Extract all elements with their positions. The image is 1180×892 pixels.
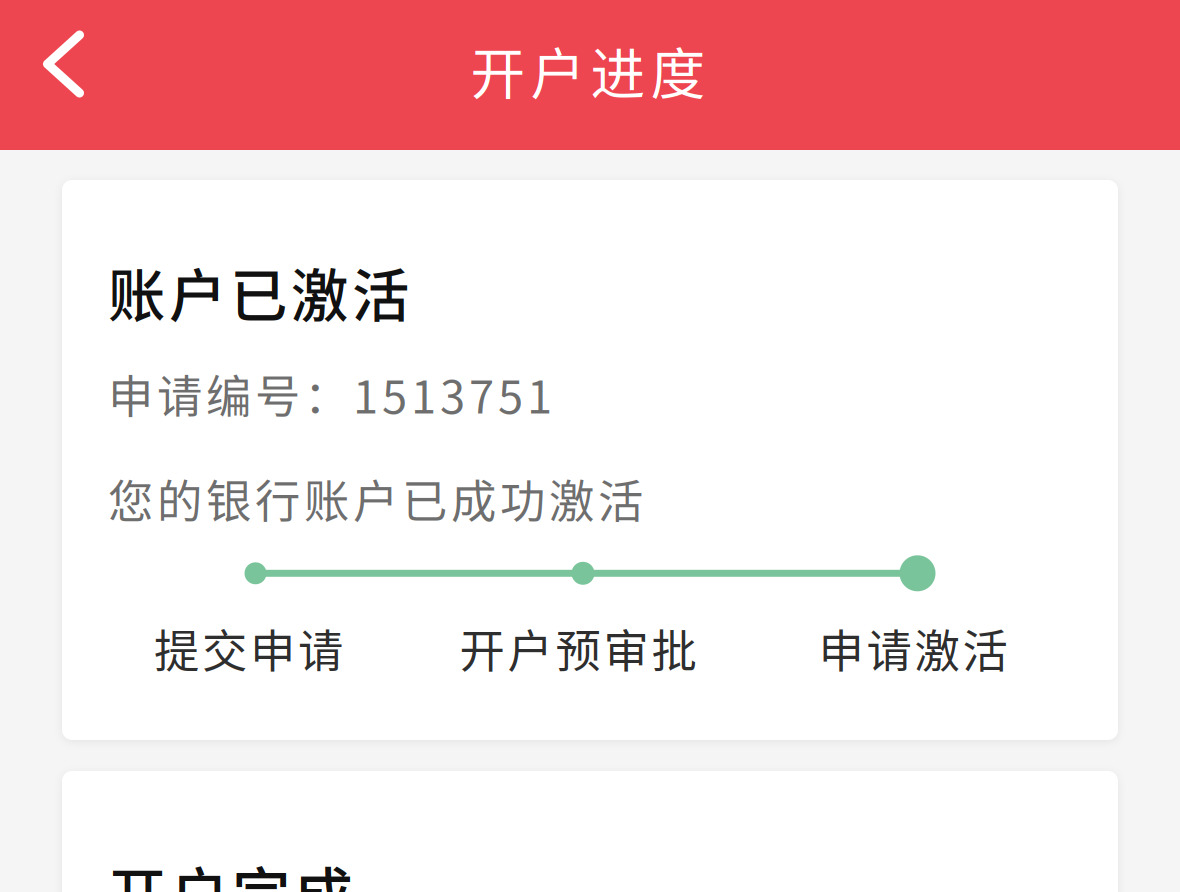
staticText: 开户完成 (108, 849, 353, 892)
staticText: 开户进度 (470, 30, 705, 110)
staticText: 申请编号：1513751 (108, 361, 552, 427)
staticText: 提交申请 (154, 615, 343, 681)
button[interactable]: 返回 (0, 0, 150, 152)
staticText: 您的银行账户已成功激活 (108, 466, 643, 531)
staticText: 开户预审批 (459, 615, 696, 681)
staticText: 账户已激活 (108, 250, 409, 333)
staticText: 申请激活 (818, 615, 1007, 681)
